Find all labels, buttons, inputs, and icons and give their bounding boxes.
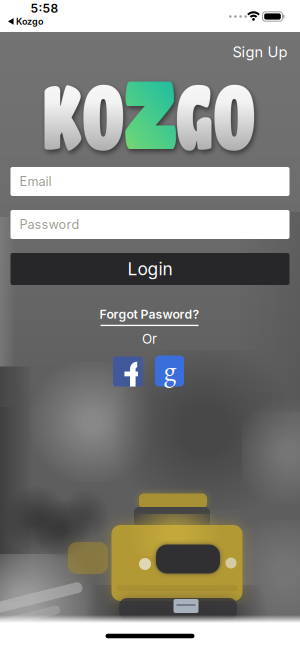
staticText: g: [164, 352, 176, 388]
staticText: Login: [127, 258, 172, 279]
staticText: Email: [19, 174, 51, 189]
button[interactable]: Sign in with Google: [155, 355, 184, 386]
staticText: Forgot Pasword?: [99, 307, 199, 322]
staticText: Kozgo: [16, 16, 44, 27]
button[interactable]: Sign Up: [232, 43, 287, 61]
staticText: Sign Up: [232, 43, 287, 61]
staticText: Password: [19, 217, 79, 232]
button[interactable]: Sign in with Facebook: [113, 356, 143, 386]
button[interactable]: Login: [10, 253, 289, 285]
staticText: Or: [142, 331, 157, 347]
textField[interactable]: Email: [19, 174, 280, 189]
secureTextField[interactable]: Password: [19, 217, 280, 232]
button[interactable]: Forgot Pasword?: [99, 307, 199, 326]
staticText: 5:58: [30, 1, 58, 16]
